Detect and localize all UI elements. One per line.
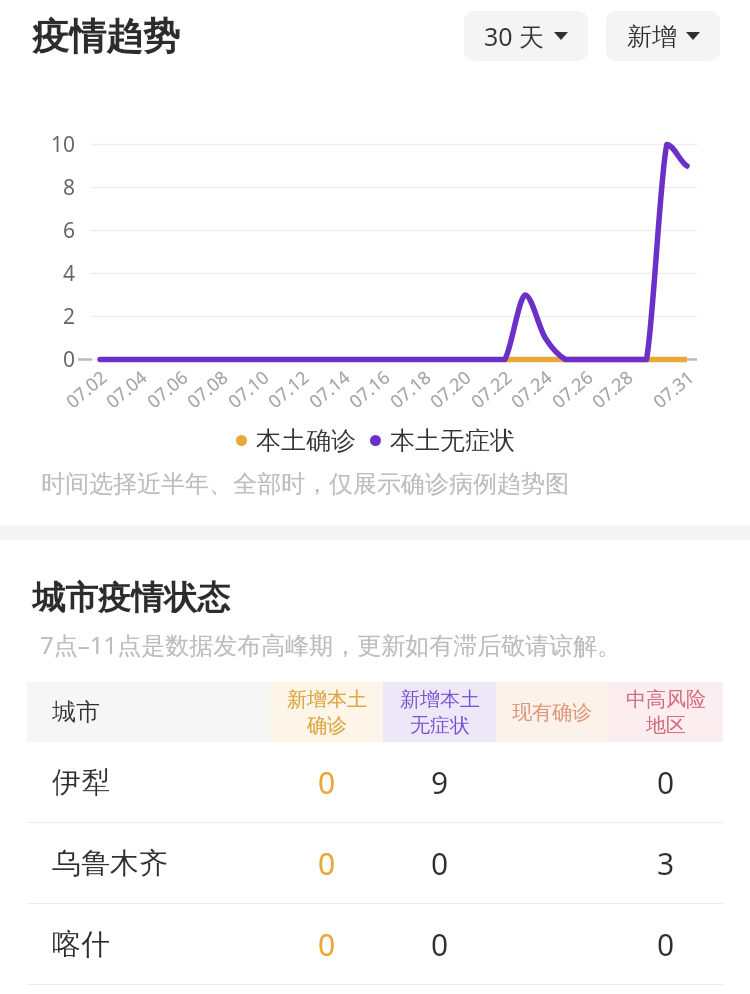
staticText: 疫情趋势 [32, 13, 180, 60]
staticText: 07.31 [648, 364, 700, 414]
staticText: 0 [657, 924, 675, 965]
staticText: 0 [431, 843, 449, 884]
staticText: 0 [63, 345, 76, 374]
staticText: 新增本土 确诊 [287, 687, 367, 738]
staticText: 07.24 [506, 364, 558, 414]
staticText: 07.12 [263, 364, 315, 414]
staticText: 07.06 [142, 364, 194, 414]
button[interactable]: 30 天 [464, 11, 588, 61]
staticText: 0 [318, 924, 336, 965]
staticText: 07.14 [304, 364, 356, 414]
staticText: 07.22 [466, 364, 518, 414]
staticText: 喀什 [52, 926, 110, 963]
staticText: 本土确诊 [256, 425, 356, 456]
staticText: 0 [318, 762, 336, 803]
staticText: 07.28 [587, 364, 639, 414]
staticText: 9 [431, 762, 449, 803]
staticText: 2 [63, 302, 76, 331]
staticText: 07.08 [182, 364, 234, 414]
staticText: 伊犁 [52, 764, 110, 801]
staticText: 本土无症状 [390, 425, 515, 456]
button[interactable]: 喀什 [27, 904, 723, 984]
staticText: 0 [657, 762, 675, 803]
staticText: 30 天 [484, 19, 545, 53]
staticText: 07.26 [547, 364, 599, 414]
button[interactable]: 新增 [606, 11, 720, 61]
staticText: 07.10 [223, 364, 275, 414]
staticText: 现有确诊 [512, 700, 592, 725]
staticText: 乌鲁木齐 [52, 845, 168, 882]
staticText: 6 [63, 216, 76, 245]
staticText: 07.04 [101, 364, 153, 414]
button[interactable]: 伊犁 [27, 742, 723, 822]
staticText: 8 [63, 173, 76, 202]
staticText: 新增本土 无症状 [400, 687, 480, 738]
staticText: 城市 [52, 697, 100, 727]
staticText: 新增 [627, 21, 677, 52]
staticText: 4 [63, 259, 76, 288]
staticText: 0 [318, 843, 336, 884]
staticText: 07.20 [425, 364, 477, 414]
staticText: 0 [431, 924, 449, 965]
staticText: 时间选择近半年、全部时，仅展示确诊病例趋势图 [41, 469, 569, 499]
staticText: 中高风险 地区 [626, 687, 706, 738]
staticText: 7点–11点是数据发布高峰期，更新如有滞后敬请谅解。 [40, 628, 622, 661]
staticText: 10 [51, 130, 76, 159]
button[interactable]: 乌鲁木齐 [27, 823, 723, 903]
staticText: 城市疫情状态 [32, 577, 230, 619]
staticText: 07.16 [344, 364, 396, 414]
staticText: 07.02 [61, 364, 113, 414]
staticText: 07.18 [385, 364, 437, 414]
staticText: 3 [657, 843, 675, 884]
